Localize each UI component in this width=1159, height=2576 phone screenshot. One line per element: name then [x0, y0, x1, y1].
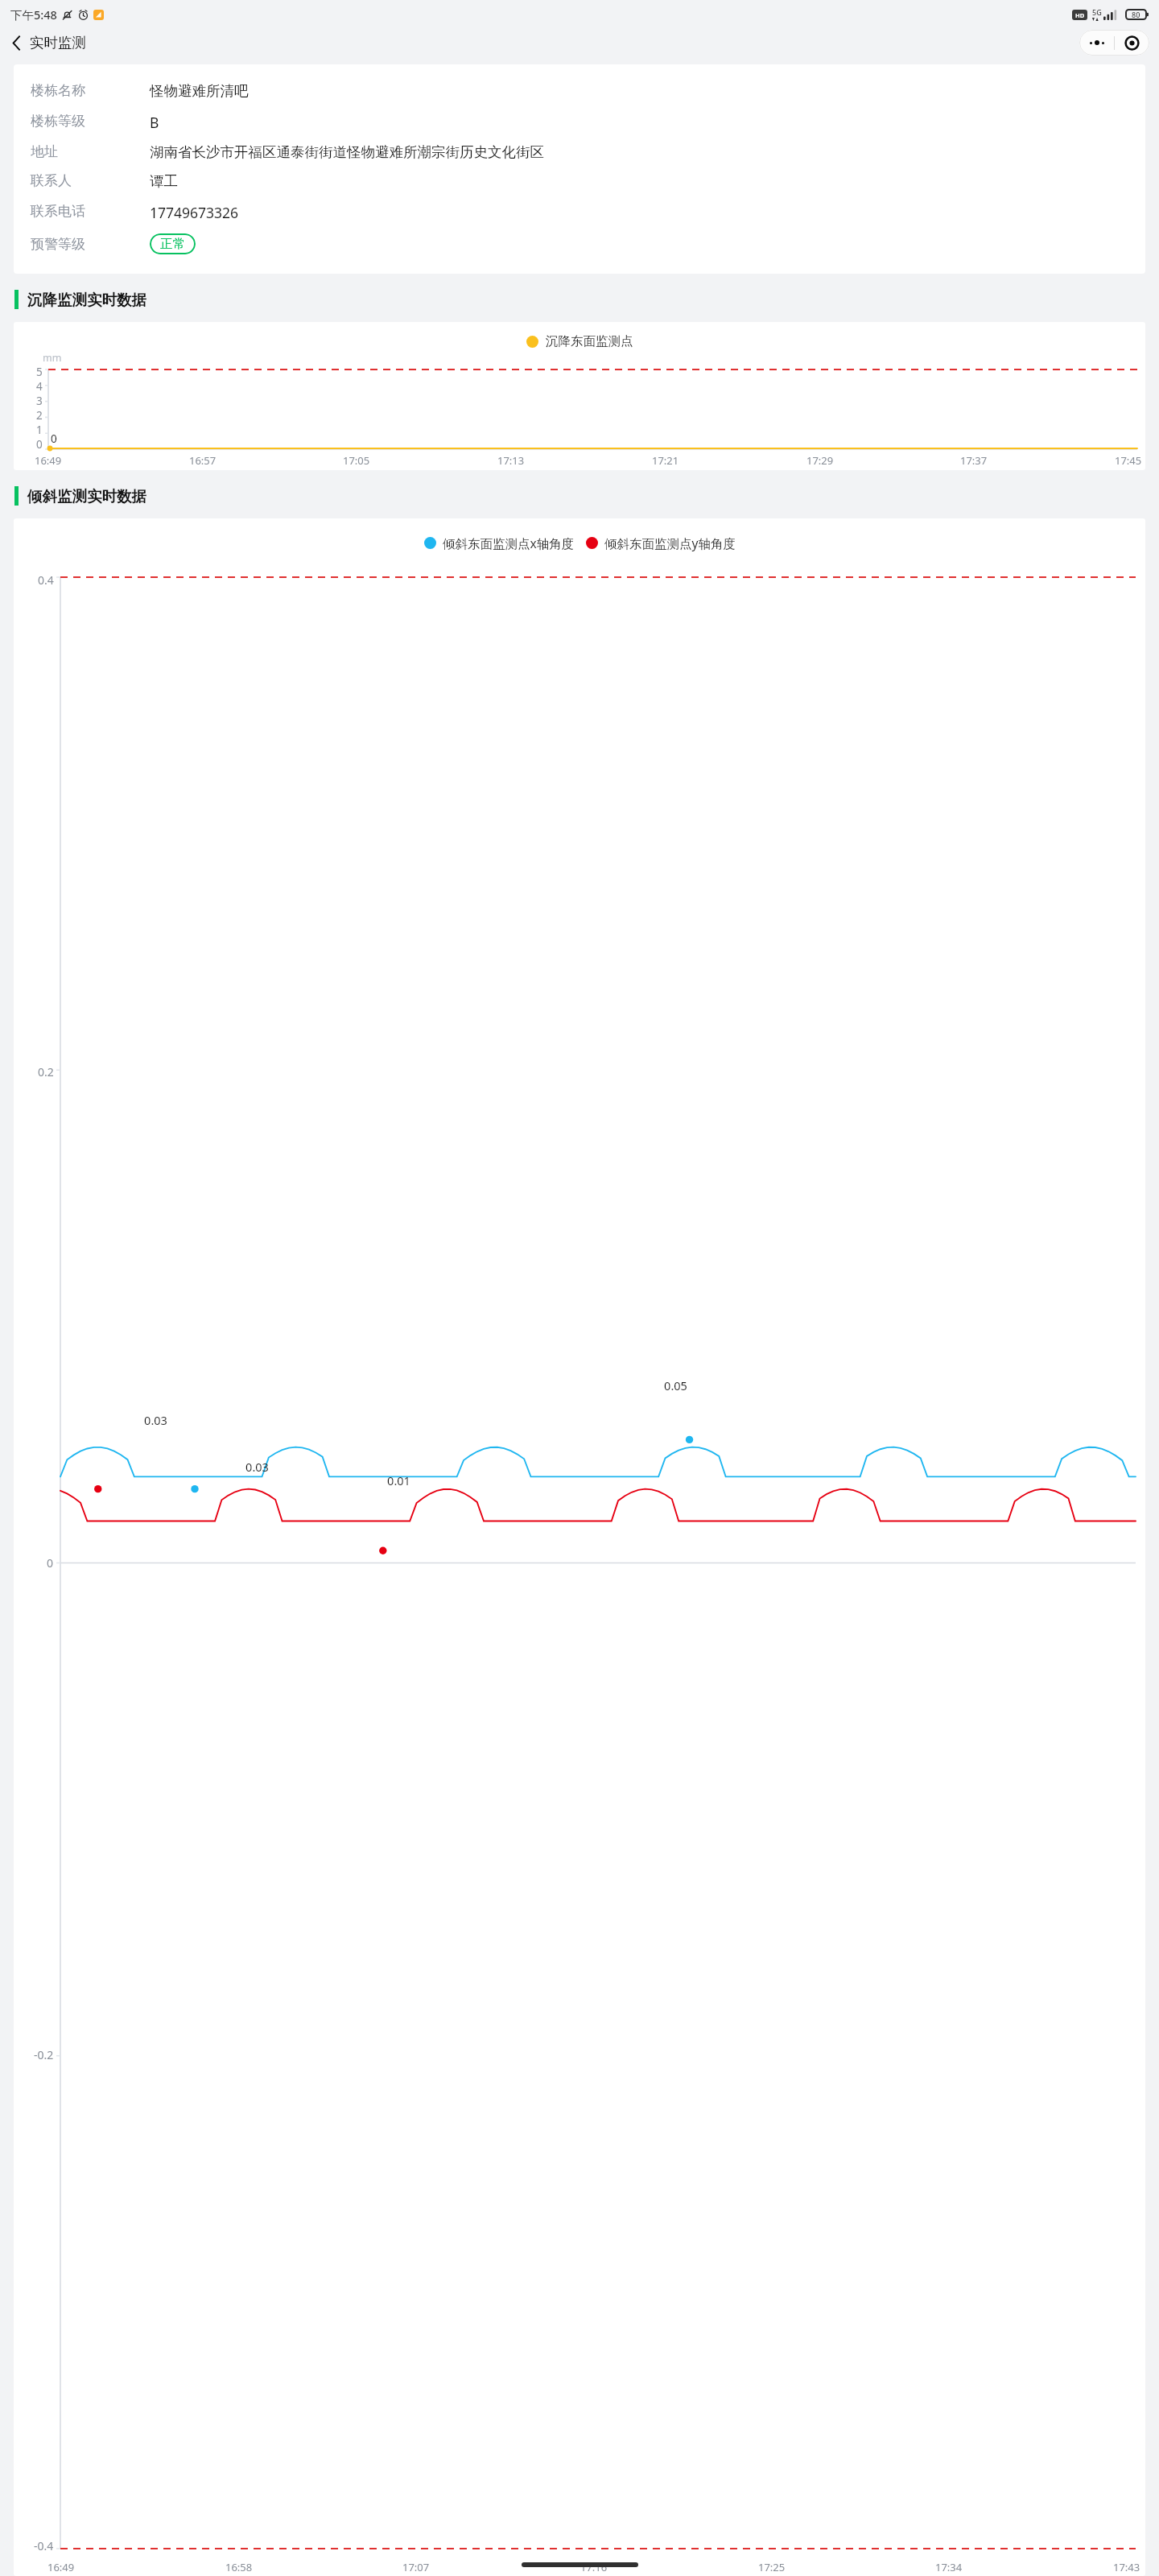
staticText: B	[150, 113, 159, 132]
staticText: 联系人	[31, 172, 150, 189]
staticText: 17:16	[580, 2560, 608, 2574]
staticText: 3	[36, 394, 43, 408]
staticText: 17:21	[652, 453, 679, 468]
staticText: 0.2	[38, 1064, 54, 1080]
staticText: 17:13	[497, 453, 525, 468]
staticText: 80	[1132, 10, 1140, 19]
staticText: 实时监测	[30, 34, 86, 52]
staticText: mm	[43, 351, 62, 365]
staticText: 0.03	[245, 1459, 269, 1475]
staticText: 楼栋等级	[31, 113, 150, 130]
staticText: 0	[36, 437, 43, 449]
staticText: 下午5:48	[10, 6, 57, 23]
staticText: 17:45	[1115, 453, 1142, 468]
staticText: 0	[47, 1555, 54, 1571]
staticText: 沉降东面监测点	[546, 333, 633, 349]
staticText: 倾斜东面监测点y轴角度	[604, 535, 736, 551]
staticText: 湖南省长沙市开福区通泰街街道怪物避难所潮宗街历史文化街区	[150, 143, 544, 161]
staticText: 4	[36, 379, 43, 394]
staticText: 倾斜东面监测点x轴角度	[443, 535, 575, 551]
staticText: 17749673326	[150, 203, 239, 222]
staticText: 17:07	[402, 2560, 430, 2574]
staticText: 5G	[1092, 7, 1102, 17]
staticText: 17:25	[758, 2560, 786, 2574]
staticText: 地址	[31, 143, 150, 160]
staticText: 16:57	[189, 453, 217, 468]
button[interactable]: 更多	[1079, 30, 1114, 56]
staticText: 0.01	[387, 1472, 410, 1488]
staticText: -0.4	[34, 2538, 54, 2553]
staticText: 正常	[160, 236, 185, 252]
button[interactable]: 返回	[5, 32, 28, 54]
staticText: 0.4	[38, 572, 54, 588]
button[interactable]: 关闭	[1115, 30, 1149, 56]
staticText: 0	[51, 431, 57, 446]
staticText: 0.05	[664, 1377, 687, 1393]
staticText: 16:58	[225, 2560, 253, 2574]
staticText: 17:05	[343, 453, 370, 468]
staticText: 预警等级	[31, 236, 150, 253]
staticText: 2	[36, 408, 43, 423]
staticText: 怪物避难所清吧	[150, 82, 249, 100]
staticText: 1	[36, 423, 43, 437]
staticText: 17:34	[935, 2560, 963, 2574]
staticText: 17:43	[1113, 2560, 1140, 2574]
staticText: 17:37	[960, 453, 988, 468]
staticText: 倾斜监测实时数据	[27, 487, 146, 506]
staticText: 联系电话	[31, 203, 150, 220]
staticText: 楼栋名称	[31, 82, 150, 99]
staticText: 0.03	[144, 1412, 167, 1428]
staticText: 16:49	[35, 453, 62, 468]
staticText: 沉降监测实时数据	[27, 291, 146, 309]
staticText: 谭工	[150, 172, 178, 190]
staticText: -0.2	[34, 2047, 54, 2062]
staticText: HD	[1075, 11, 1085, 19]
staticText: 17:29	[806, 453, 834, 468]
staticText: 16:49	[47, 2560, 75, 2574]
staticText: 5	[36, 365, 43, 379]
